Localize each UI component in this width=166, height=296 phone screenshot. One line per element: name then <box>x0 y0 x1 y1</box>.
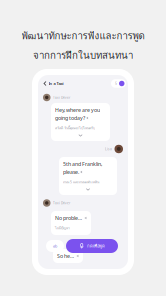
staticText: going today? <box>55 114 85 122</box>
staticText: In a Taxi <box>48 81 63 86</box>
staticText: ถนน 5 และถนนแฟรงคลิน <box>63 179 99 185</box>
staticText: So here we are. <box>57 252 75 260</box>
staticText: Hey, where are you <box>55 106 100 114</box>
staticText: Taxi Driver <box>53 201 70 205</box>
staticText: ab <box>53 243 57 249</box>
button[interactable]: In a Taxi <box>40 78 67 89</box>
button[interactable]: กดเพื่อพูด <box>66 239 118 253</box>
staticText: Taxi Driver <box>53 95 70 100</box>
staticText: ไม่มีปัญหา <box>55 225 70 231</box>
button[interactable]: Profile <box>111 79 126 88</box>
staticText: สวัสดี วันนี้คุณจะไปไหนครับ <box>55 125 95 131</box>
staticText: 5th and Franklin, <box>63 160 102 168</box>
staticText: พัฒนาทักษะการฟังและการพูด <box>21 28 144 43</box>
staticText: กดเพื่อพูด <box>87 243 105 249</box>
staticText: No problem. <box>55 214 83 222</box>
staticText: 5 <box>115 81 117 86</box>
staticText: จากการฝึกในบทสนทนา <box>33 47 133 63</box>
staticText: Lisa <box>105 147 112 151</box>
staticText: please. <box>63 168 79 176</box>
button[interactable]: Keyboard <box>46 240 64 252</box>
